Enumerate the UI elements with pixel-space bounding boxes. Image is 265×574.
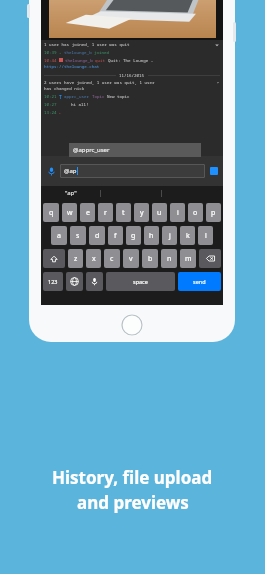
button[interactable]: d xyxy=(89,226,105,245)
staticText: @ap xyxy=(64,167,77,175)
staticText: w xyxy=(67,208,73,218)
button[interactable]: send xyxy=(178,272,221,291)
button[interactable]: Image preview xyxy=(49,0,216,38)
staticText: i xyxy=(177,208,179,218)
staticText: space xyxy=(133,278,148,285)
staticText: u xyxy=(157,208,162,218)
button[interactable]: Voice typing xyxy=(86,272,103,291)
staticText: y xyxy=(140,208,144,218)
button[interactable]: Send message xyxy=(208,165,220,177)
button[interactable]: a xyxy=(51,226,67,245)
staticText: h xyxy=(149,231,154,241)
button[interactable]: n xyxy=(161,249,177,268)
button[interactable]: @apprc_user xyxy=(69,143,201,157)
button[interactable]: c xyxy=(104,249,120,268)
staticText: q xyxy=(49,208,54,218)
staticText: z xyxy=(74,254,78,264)
staticText: and previews xyxy=(77,491,189,514)
button[interactable]: i xyxy=(170,203,185,222)
staticText: b xyxy=(148,254,153,264)
button[interactable]: https://thelounge.chat xyxy=(44,64,100,70)
staticText: l xyxy=(205,231,207,241)
staticText: k xyxy=(186,231,190,241)
staticText: r xyxy=(104,208,107,218)
button[interactable]: k xyxy=(180,226,195,245)
staticText: hi all! xyxy=(71,102,89,108)
staticText: s xyxy=(76,231,80,241)
staticText: n xyxy=(167,254,172,264)
button[interactable]: x xyxy=(86,249,101,268)
button[interactable]: m xyxy=(180,249,196,268)
staticText: apprc_user xyxy=(64,94,90,100)
button[interactable]: y xyxy=(134,203,149,222)
staticText: o xyxy=(193,208,198,218)
staticText: 1 user has joined, 1 user was quit xyxy=(44,42,214,48)
button[interactable]: space xyxy=(106,272,175,291)
button[interactable]: w xyxy=(62,203,77,222)
button[interactable]: v xyxy=(123,249,139,268)
button[interactable]: u xyxy=(152,203,167,222)
button[interactable]: e xyxy=(80,203,95,222)
staticText: @apprc_user xyxy=(73,146,110,154)
staticText: Topic xyxy=(92,94,105,100)
button[interactable] xyxy=(101,186,162,200)
staticText: History, file upload xyxy=(52,466,213,489)
staticText: ← xyxy=(59,110,62,116)
staticText: Quit: The Lounge - xyxy=(108,58,154,64)
button[interactable]: b xyxy=(142,249,158,268)
staticText: send xyxy=(193,278,206,285)
staticText: 2 users have joined, 1 user was quit, 1 … xyxy=(44,80,155,86)
staticText: thelounge_b xyxy=(64,50,92,56)
button[interactable]: t xyxy=(116,203,131,222)
staticText: 123 xyxy=(48,278,58,285)
staticText: New topic xyxy=(107,94,130,100)
button[interactable]: j xyxy=(162,226,177,245)
button[interactable]: Voice input xyxy=(44,164,58,178)
staticText: e xyxy=(86,208,90,218)
button[interactable]: Change language xyxy=(66,272,83,291)
button[interactable]: 123 xyxy=(43,272,63,291)
button[interactable]: g xyxy=(126,226,141,245)
button[interactable]: "ap" xyxy=(41,186,101,200)
staticText: x xyxy=(92,254,96,264)
staticText: 10:21 xyxy=(44,94,57,100)
staticText: joined xyxy=(94,50,110,56)
staticText: 10:39 xyxy=(44,50,57,56)
staticText: has changed nick xyxy=(44,86,85,92)
button[interactable]: s xyxy=(70,226,86,245)
staticText: 10:27 xyxy=(44,102,57,108)
staticText: f xyxy=(114,231,117,241)
button[interactable]: Backspace xyxy=(199,249,221,268)
button[interactable]: h xyxy=(144,226,159,245)
staticText: p xyxy=(211,208,216,218)
button[interactable]: q xyxy=(43,203,59,222)
button[interactable]: l xyxy=(198,226,213,245)
button[interactable]: r xyxy=(98,203,113,222)
button[interactable]: o xyxy=(188,203,203,222)
staticText: c xyxy=(110,254,114,264)
button[interactable]: z xyxy=(68,249,83,268)
button[interactable]: Home xyxy=(121,314,143,336)
button[interactable]: f xyxy=(108,226,123,245)
staticText: t xyxy=(122,208,125,218)
staticText: g xyxy=(131,231,136,241)
staticText: 10:44 xyxy=(44,58,57,64)
staticText: thelounge_b xyxy=(65,58,93,64)
staticText: quit xyxy=(95,58,106,64)
button[interactable]: Shift xyxy=(43,249,65,268)
staticText: m xyxy=(185,254,192,264)
staticText: ▸ xyxy=(217,80,220,85)
staticText: d xyxy=(95,231,100,241)
staticText: j xyxy=(169,231,171,241)
button[interactable]: p xyxy=(206,203,221,222)
staticText: v xyxy=(129,254,133,264)
staticText: "ap" xyxy=(65,189,77,197)
staticText: a xyxy=(57,231,61,241)
staticText: T xyxy=(59,94,62,100)
button[interactable]: @ap xyxy=(60,164,205,178)
staticText: 11/16/2015 xyxy=(119,73,145,79)
staticText: 13:24 xyxy=(44,110,57,116)
staticText: → xyxy=(59,50,62,56)
